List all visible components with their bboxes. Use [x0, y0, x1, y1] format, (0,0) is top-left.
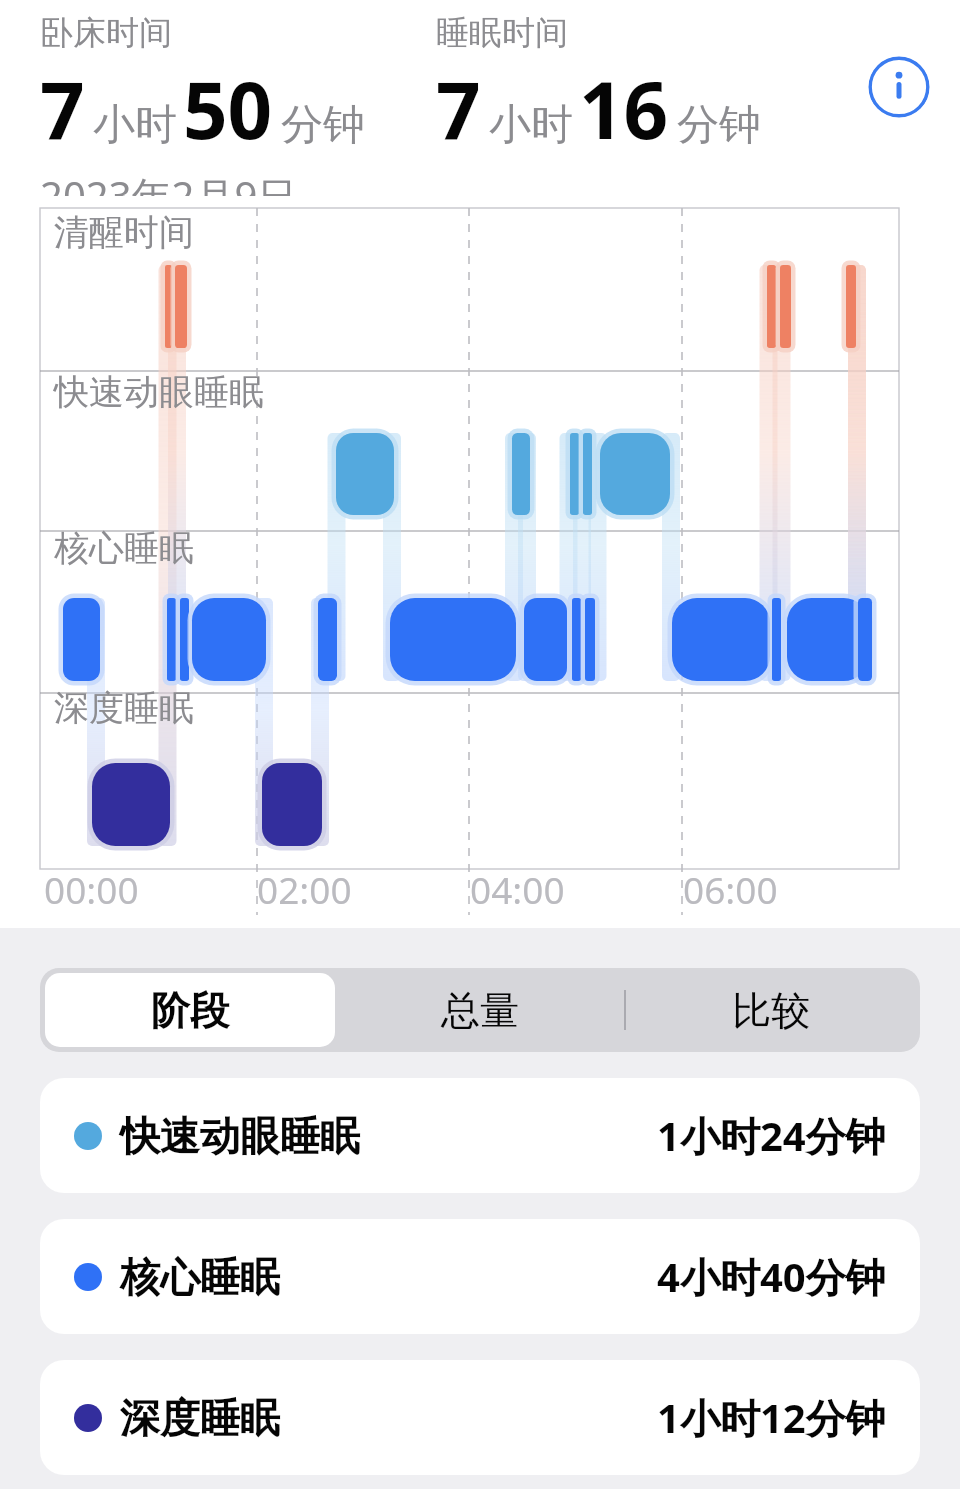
staticText: 2023年2月9日 [40, 168, 298, 196]
staticText: 02:00 [257, 864, 352, 914]
staticText: 总量 [441, 986, 519, 1035]
staticText: 7 [40, 56, 85, 162]
staticText: 核心睡眠 [54, 526, 194, 570]
button[interactable]: 信息 [868, 56, 930, 118]
staticText: 1小时12分钟 [657, 1390, 886, 1445]
staticText: 核心睡眠 [120, 1252, 280, 1302]
button[interactable]: 深度睡眠 [40, 1360, 920, 1475]
staticText: 16 [579, 56, 669, 162]
staticText: 深度睡眠 [120, 1393, 280, 1443]
staticText: 小时 [489, 99, 573, 152]
staticText: 50 [183, 56, 273, 162]
staticText: 快速动眼睡眠 [120, 1111, 360, 1161]
button[interactable]: 总量 [335, 973, 624, 1047]
button[interactable]: 快速动眼睡眠 [40, 1078, 920, 1193]
staticText: 分钟 [677, 99, 761, 152]
button[interactable]: 比较 [626, 973, 915, 1047]
staticText: 卧床时间 [40, 12, 172, 54]
staticText: 比较 [732, 986, 810, 1035]
staticText: 04:00 [470, 864, 565, 914]
staticText: 分钟 [281, 99, 365, 152]
button[interactable]: 阶段 [45, 973, 335, 1047]
staticText: 1小时24分钟 [657, 1108, 886, 1163]
staticText: 快速动眼睡眠 [54, 370, 264, 414]
staticText: 阶段 [151, 986, 229, 1035]
staticText: 00:00 [44, 864, 139, 914]
button[interactable]: 核心睡眠 [40, 1219, 920, 1334]
staticText: 06:00 [683, 864, 778, 914]
staticText: 7 [436, 56, 481, 162]
staticText: 4小时40分钟 [657, 1249, 886, 1304]
staticText: 小时 [93, 99, 177, 152]
staticText: 深度睡眠 [54, 686, 194, 730]
staticText: 清醒时间 [54, 210, 194, 254]
staticText: 睡眠时间 [436, 12, 568, 54]
